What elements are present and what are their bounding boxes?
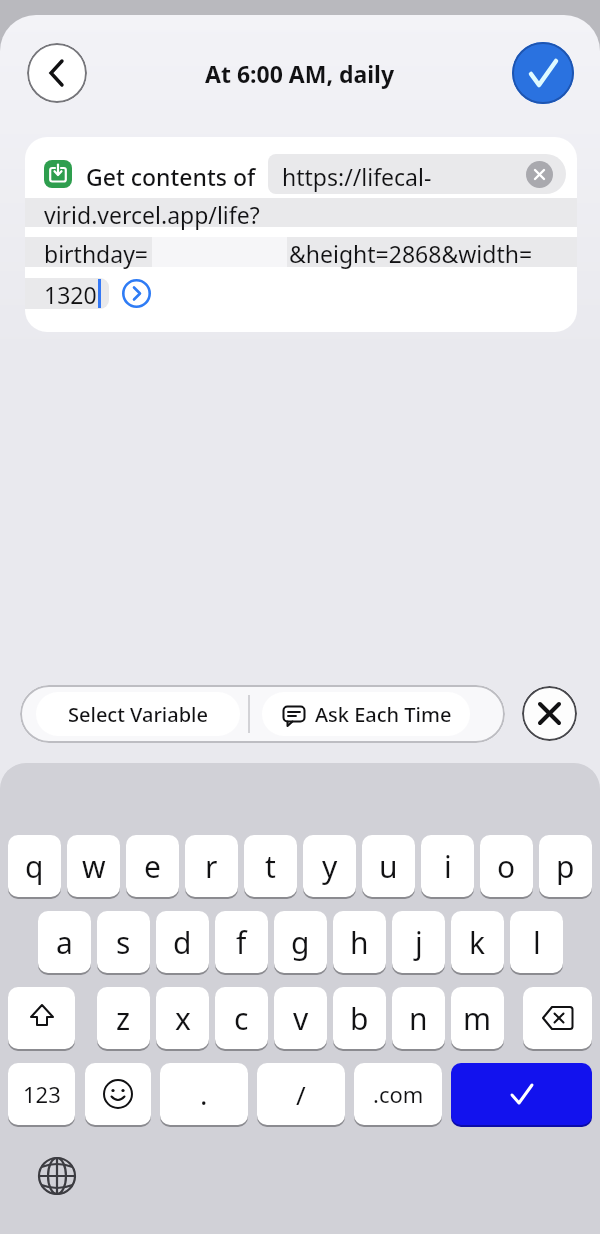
button[interactable]: Get contents of [25,137,577,332]
staticText: 123 [23,1079,61,1109]
button[interactable]: . [160,1063,248,1125]
button[interactable] [451,1063,592,1125]
button[interactable] [526,161,553,188]
staticText: At 6:00 AM, daily [205,58,395,89]
button[interactable]: m [451,987,504,1049]
staticText: q [25,846,44,887]
staticText: g [291,922,310,963]
staticText: l [533,922,541,963]
button[interactable]: f [215,911,268,973]
button[interactable]: k [451,911,504,973]
staticText: r [205,846,218,887]
button[interactable] [121,278,152,309]
staticText: p [556,846,575,887]
button[interactable]: z [97,987,150,1049]
staticText: h [350,922,369,963]
button[interactable]: j [392,911,445,973]
button[interactable]: a [38,911,91,973]
staticText: t [265,846,276,887]
staticText: Select Variable [68,701,208,728]
staticText: b [350,998,369,1039]
staticText: n [409,998,428,1039]
staticText: f [236,922,247,963]
button[interactable]: g [274,911,327,973]
button[interactable] [522,686,577,741]
staticText: y [322,846,338,887]
staticText: 1320 [44,279,97,310]
button[interactable]: b [333,987,386,1049]
staticText: birthday= [44,238,149,269]
button[interactable]: n [392,987,445,1049]
button[interactable] [512,42,574,104]
button[interactable] [27,43,87,103]
button[interactable]: 123 [8,1063,75,1125]
staticText: c [234,998,249,1039]
staticText: x [175,998,191,1039]
staticText: Ask Each Time [315,701,452,728]
button[interactable] [34,1153,80,1199]
staticText: v [293,998,309,1039]
button[interactable]: e [126,835,179,897]
button[interactable]: Ask Each Time [262,692,470,736]
staticText: w [82,846,106,887]
button[interactable]: x [156,987,209,1049]
button[interactable]: o [480,835,533,897]
button[interactable]: c [215,987,268,1049]
button[interactable]: h [333,911,386,973]
button[interactable] [523,987,592,1049]
button[interactable]: v [274,987,327,1049]
staticText: m [463,998,492,1039]
button[interactable]: Select Variable [36,692,240,736]
staticText: .com [373,1079,424,1109]
staticText: &height=2868&width= [289,238,533,269]
staticText: https://lifecal- [282,161,432,192]
staticText: d [173,922,192,963]
staticText: . [200,1075,208,1113]
button[interactable]: d [156,911,209,973]
staticText: k [469,922,486,963]
staticText: i [444,846,452,887]
button[interactable]: p [539,835,592,897]
staticText: o [497,846,516,887]
button[interactable] [85,1063,151,1125]
staticText: e [144,846,161,887]
button[interactable]: / [257,1063,345,1125]
staticText: s [116,922,131,963]
button[interactable]: r [185,835,238,897]
button[interactable]: q [8,835,61,897]
button[interactable]: l [510,911,563,973]
button[interactable]: y [303,835,356,897]
button[interactable]: t [244,835,297,897]
staticText: j [415,922,423,963]
button[interactable] [8,987,75,1049]
button[interactable]: w [67,835,120,897]
staticText: a [56,922,73,963]
staticText: Get contents of [86,161,256,192]
staticText: u [379,846,398,887]
button[interactable]: i [421,835,474,897]
button[interactable]: .com [354,1063,442,1125]
staticText: z [116,998,131,1039]
staticText: virid.vercel.app/life? [44,199,260,230]
button[interactable]: s [97,911,150,973]
button[interactable]: u [362,835,415,897]
staticText: / [296,1077,306,1112]
